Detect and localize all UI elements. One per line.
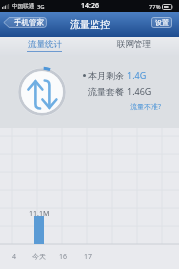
staticText: 4 [12,252,17,262]
button[interactable]: 流量统计 [0,37,89,56]
staticText: 联网管理 [117,39,151,50]
staticText: 14:26 [81,1,99,11]
staticText: 11.1M [29,209,50,219]
staticText: 手机管家 [14,18,44,27]
staticText: 16 [59,252,68,262]
button[interactable]: 手机管家 [3,17,47,28]
staticText: 本月剩余 [88,70,124,81]
staticText: 流量不准? [130,102,162,112]
button[interactable]: 设置 [151,17,172,28]
staticText: 流量统计 [28,39,62,50]
staticText: 设置 [155,18,169,27]
button[interactable]: 联网管理 [89,37,179,56]
staticText: 中国联通 [12,3,35,10]
staticText: 流量监控 [70,18,110,31]
staticText: 3G [37,3,45,11]
button[interactable]: 流量不准? [130,102,162,112]
staticText: 1.46G [127,85,152,97]
staticText: 1.4G [127,69,147,81]
staticText: 77% [149,3,161,11]
staticText: 17 [84,252,93,262]
staticText: 流量套餐 [88,86,124,97]
staticText: 今天 [32,252,46,261]
